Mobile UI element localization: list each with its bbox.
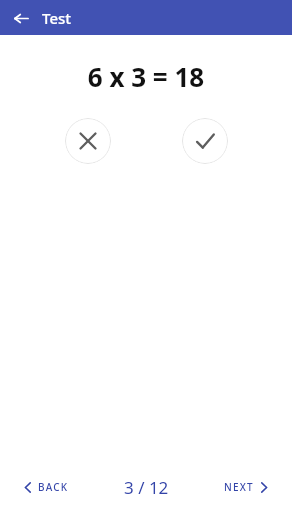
staticText: 3 / 12 [124,476,169,499]
staticText: Test [42,8,72,28]
button[interactable]: Mark incorrect [65,118,111,164]
button[interactable]: Back [8,5,34,31]
staticText: BACK [38,480,69,494]
staticText: NEXT [224,480,254,494]
button[interactable]: BACK [18,472,75,502]
staticText: 6 x 3 = 18 [0,59,292,94]
button[interactable]: NEXT [218,472,274,502]
button[interactable]: Mark correct [182,118,228,164]
